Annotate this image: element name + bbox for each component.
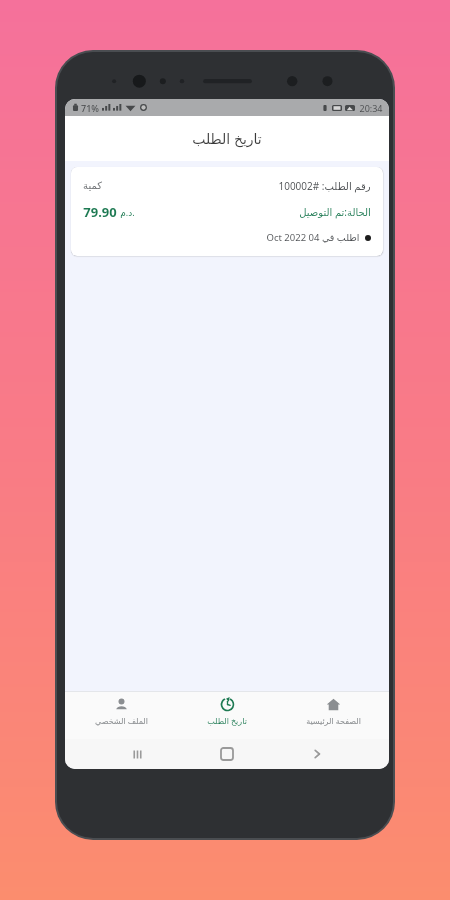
other: Profile xyxy=(114,697,129,712)
staticText: 79.90 xyxy=(83,203,117,221)
button[interactable]: Back xyxy=(299,739,335,769)
staticText: الملف الشخصي xyxy=(95,715,148,726)
button[interactable]: Home xyxy=(283,691,383,739)
staticText: 71% xyxy=(81,102,99,114)
other: Home xyxy=(326,697,341,712)
staticText: تاريخ الطلب xyxy=(207,715,247,726)
staticText: 20:34 xyxy=(359,102,383,114)
button[interactable]: كمية xyxy=(71,167,383,256)
button[interactable]: Home xyxy=(209,739,245,769)
staticText: Oct 2022 04 اطلب في xyxy=(266,231,360,244)
staticText: رقم الطلب: #100002 xyxy=(278,179,371,193)
staticText: الصفحة الرئيسية xyxy=(306,715,361,726)
button[interactable]: Order history xyxy=(177,691,277,739)
staticText: الحالة:تم التوصيل xyxy=(299,205,371,219)
button[interactable]: Recents xyxy=(119,739,155,769)
button[interactable]: Profile xyxy=(71,691,171,739)
staticText: تاريخ الطلب xyxy=(192,129,262,148)
staticText: د.م. xyxy=(120,206,135,218)
staticText: كمية xyxy=(83,180,102,192)
other: Order history xyxy=(220,697,235,712)
